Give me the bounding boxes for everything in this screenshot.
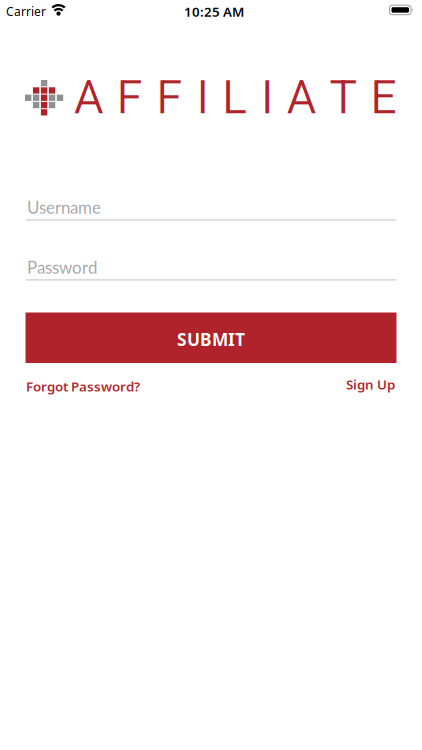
staticText: Username xyxy=(27,197,101,217)
staticText: I xyxy=(196,70,208,124)
button[interactable]: Username xyxy=(26,197,396,220)
staticText: A xyxy=(74,70,103,124)
button[interactable]: SUBMIT xyxy=(25,312,396,363)
staticText: E xyxy=(370,70,396,124)
staticText: I xyxy=(261,70,273,124)
staticText: Password xyxy=(27,257,97,277)
staticText: F xyxy=(157,70,183,124)
staticText: Carrier xyxy=(6,3,46,19)
staticText: SUBMIT xyxy=(177,328,245,351)
staticText: F xyxy=(117,70,143,124)
staticText: Forgot Password? xyxy=(26,377,140,395)
staticText: T xyxy=(330,70,357,124)
button[interactable]: Sign Up xyxy=(295,375,395,393)
staticText: Sign Up xyxy=(346,375,395,393)
staticText: A xyxy=(287,70,316,124)
button[interactable]: Password xyxy=(26,257,396,280)
staticText: 10:25 AM xyxy=(184,3,244,20)
button[interactable]: Forgot Password? xyxy=(26,377,140,395)
staticText: L xyxy=(222,70,247,124)
